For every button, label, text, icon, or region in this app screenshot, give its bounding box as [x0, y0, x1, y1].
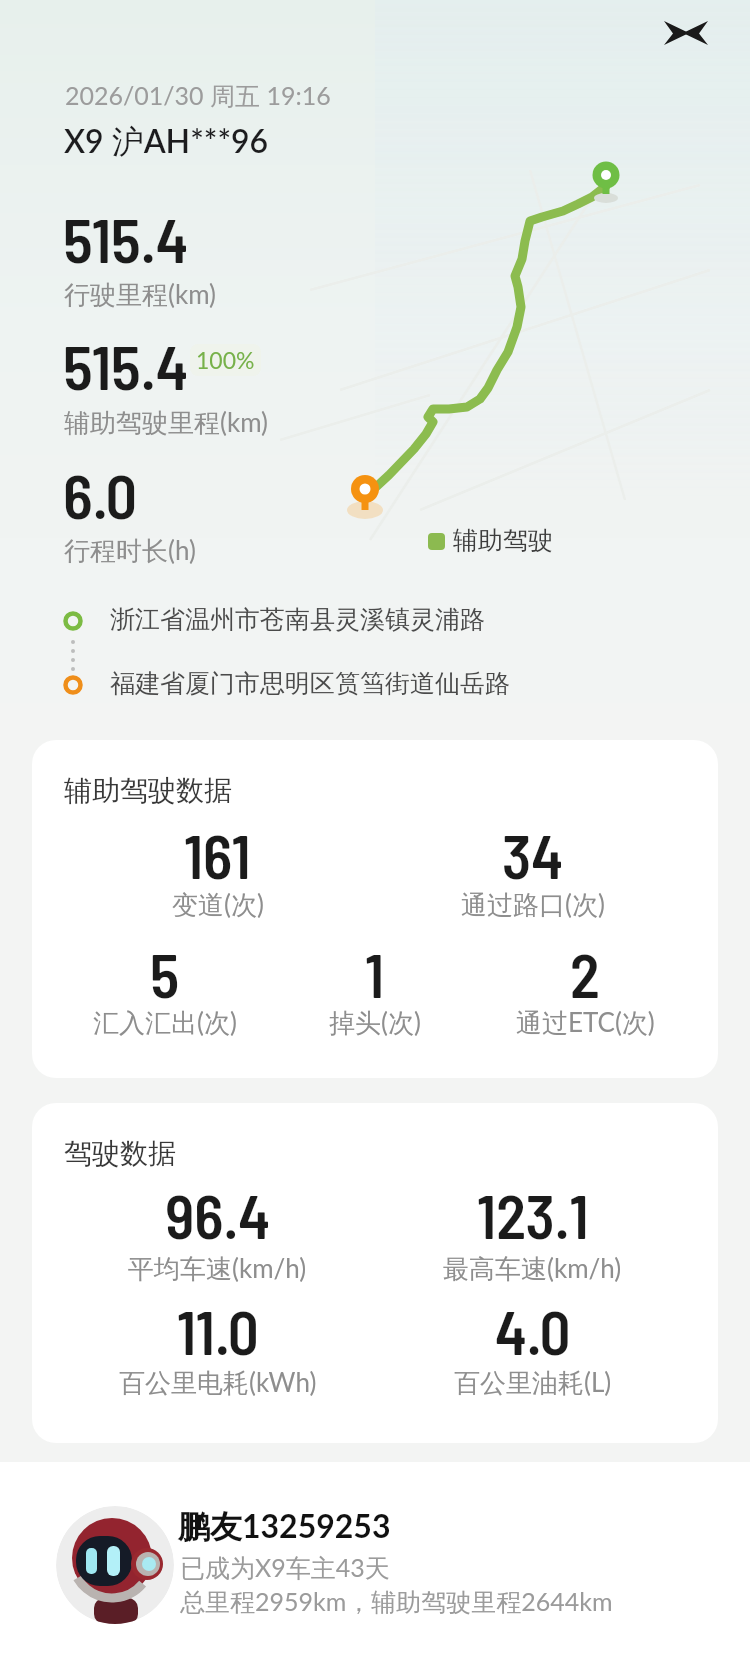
staticText: 行驶里程(km) [64, 278, 217, 311]
staticText: 掉头(次) [329, 1006, 421, 1039]
staticText: 100% [196, 346, 255, 374]
staticText: 1 [365, 937, 385, 1010]
staticText: 变道(次) [172, 888, 264, 921]
staticText: 515.4 [63, 201, 189, 275]
staticText: 96.4 [165, 1178, 271, 1251]
staticText: 123.1 [477, 1178, 589, 1251]
staticText: 汇入汇出(次) [93, 1006, 237, 1039]
staticText: 百公里电耗(kWh) [119, 1366, 317, 1399]
staticText: 11.0 [177, 1294, 259, 1367]
staticText: 百公里油耗(L) [454, 1366, 612, 1399]
staticText: X9 沪AH***96 [64, 121, 269, 162]
staticText: 4.0 [495, 1294, 571, 1367]
staticText: 通过ETC(次) [516, 1006, 655, 1039]
staticText: 鹏友13259253 [178, 1506, 391, 1547]
staticText: 515.4 [63, 328, 189, 402]
staticText: 浙江省温州市苍南县灵溪镇灵浦路 [110, 604, 485, 635]
staticText: 辅助驾驶数据 [64, 773, 232, 808]
staticText: 福建省厦门市思明区筼筜街道仙岳路 [110, 668, 510, 699]
staticText: 辅助驾驶里程(km) [64, 406, 269, 439]
staticText: 2026/01/30 周五 19:16 [65, 80, 331, 112]
button[interactable] [664, 21, 708, 46]
staticText: 161 [184, 818, 251, 891]
staticText: 平均车速(km/h) [128, 1252, 307, 1285]
staticText: 辅助驾驶 [453, 525, 553, 556]
staticText: 34 [502, 818, 564, 891]
staticText: 通过路口(次) [461, 888, 605, 921]
staticText: 2 [570, 937, 600, 1010]
staticText: 已成为X9车主43天 [180, 1552, 390, 1584]
staticText: 行程时长(h) [64, 534, 196, 567]
staticText: 驾驶数据 [64, 1136, 176, 1171]
button[interactable]: 鹏友13259253 [0, 1462, 750, 1654]
staticText: 6.0 [63, 457, 138, 531]
staticText: 最高车速(km/h) [443, 1252, 622, 1285]
staticText: 总里程2959km，辅助驾驶里程2644km [180, 1586, 613, 1618]
staticText: 5 [150, 937, 180, 1010]
